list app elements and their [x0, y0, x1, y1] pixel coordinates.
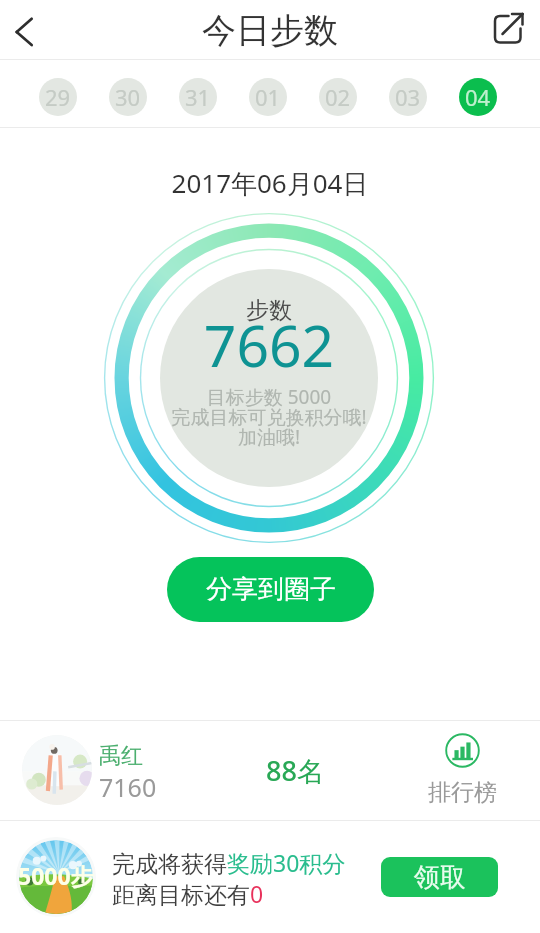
button[interactable]: 分享到圈子 — [167, 557, 374, 622]
button[interactable]: Share — [484, 0, 540, 56]
staticText: 完成将获得奖励30积分 — [112, 847, 346, 878]
staticText: 今日步数 — [202, 9, 338, 52]
button[interactable]: 领取 — [381, 857, 498, 897]
staticText: 领取 — [414, 861, 466, 894]
staticText: 02 — [325, 82, 351, 112]
button[interactable]: 29 — [39, 78, 77, 116]
staticText: 排行榜 — [428, 778, 497, 807]
button[interactable]: Back — [0, 2, 56, 58]
button[interactable]: 01 — [249, 78, 287, 116]
staticText: 分享到圈子 — [206, 573, 336, 606]
staticText: 01 — [255, 82, 281, 112]
staticText: 禹红 — [99, 742, 143, 770]
staticText: 29 — [45, 82, 71, 112]
button[interactable]: 02 — [319, 78, 357, 116]
button[interactable]: 03 — [389, 78, 427, 116]
staticText: 加油哦! — [94, 424, 444, 450]
staticText: 30 — [115, 82, 141, 112]
staticText: 完成目标可兑换积分哦! — [94, 404, 444, 430]
staticText: 88名 — [266, 752, 324, 789]
staticText: 目标步数 5000 — [94, 384, 444, 410]
button[interactable]: 31 — [179, 78, 217, 116]
staticText: 7662 — [94, 306, 444, 384]
button[interactable]: 30 — [109, 78, 147, 116]
staticText: 5000步 — [18, 860, 94, 891]
staticText: 7160 — [99, 770, 157, 804]
button[interactable]: 04 — [459, 78, 497, 116]
staticText: 2017年06月04日 — [0, 165, 540, 201]
staticText: 04 — [465, 82, 491, 112]
staticText: 03 — [395, 82, 421, 112]
button[interactable]: 禹红 — [0, 721, 540, 820]
staticText: 步数 — [94, 296, 444, 325]
staticText: 31 — [185, 82, 211, 112]
staticText: 距离目标还有0 — [112, 878, 264, 909]
